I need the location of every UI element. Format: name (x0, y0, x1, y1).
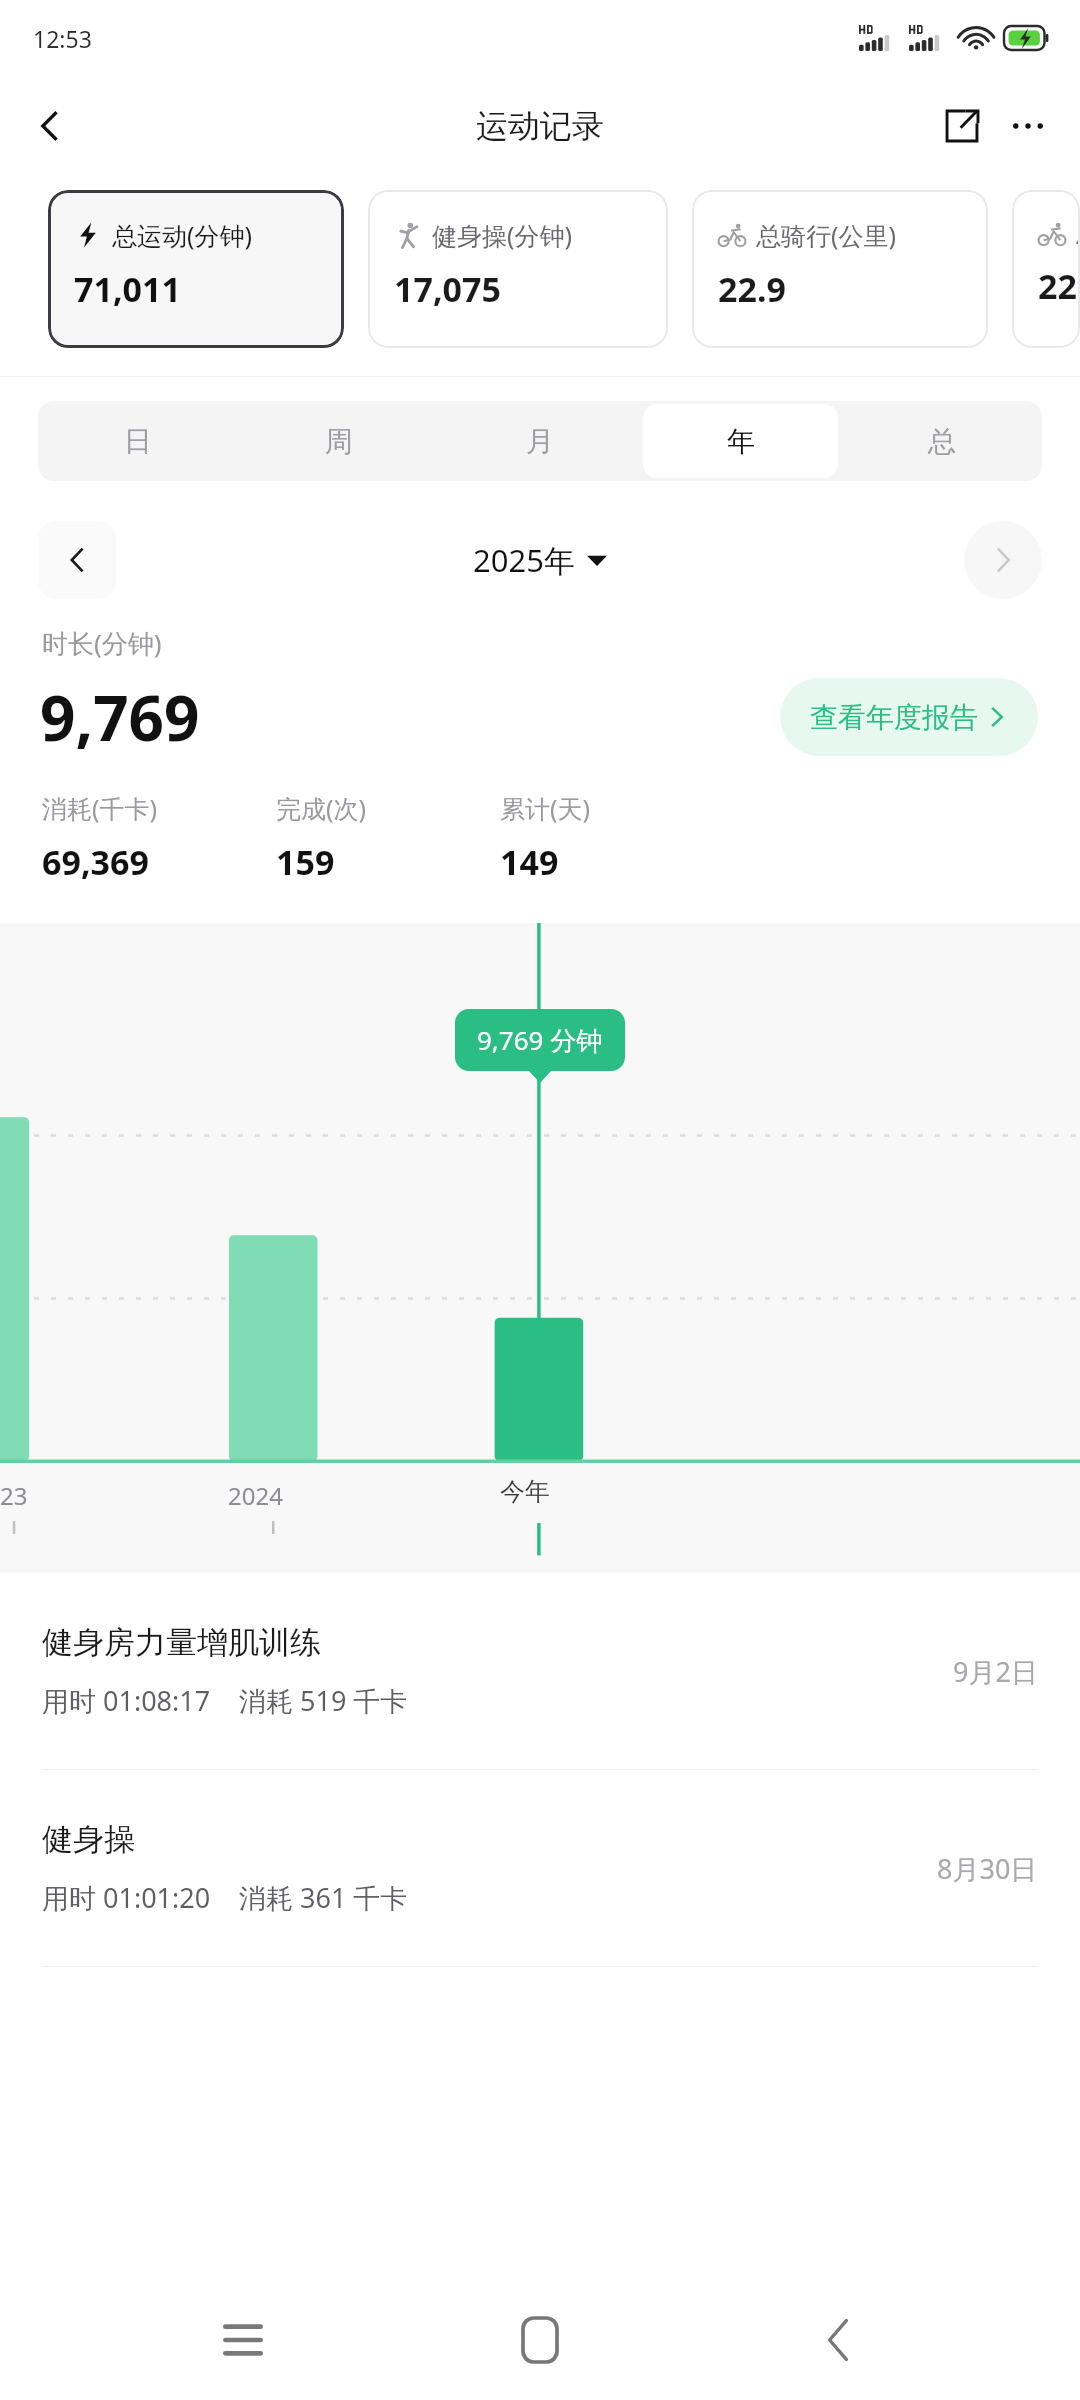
button[interactable]: 年 (643, 404, 838, 478)
staticText: 12:53 (33, 23, 92, 54)
button[interactable]: Home (485, 2285, 595, 2395)
button[interactable]: Next year (964, 521, 1042, 599)
staticText: 月 (526, 424, 554, 459)
staticText: 总骑行(公里) (756, 218, 897, 252)
staticText: 8月30日 (937, 1850, 1038, 1887)
staticText: 运动记录 (476, 106, 604, 146)
staticText: 日 (124, 424, 152, 459)
button[interactable]: More options (998, 96, 1058, 156)
staticText: 总 (928, 424, 956, 459)
button[interactable]: 健身操(分钟) (368, 190, 668, 348)
staticText: 9月2日 (953, 1653, 1038, 1690)
staticText: 消耗 361 千卡 (239, 1879, 408, 1916)
staticText: 消耗(千卡) (42, 791, 158, 825)
staticText: 健身房力量增肌训练 (42, 1623, 321, 1662)
button[interactable]: Back (22, 98, 78, 154)
staticText: 健身操(分钟) (432, 218, 573, 252)
staticText: 总运动(分钟) (112, 218, 253, 252)
button[interactable]: 健身操 (0, 1770, 1080, 1967)
staticText: 17,075 (394, 266, 501, 312)
staticText: 用时 01:08:17 (42, 1682, 211, 1719)
staticText: 时长(分钟) (42, 625, 162, 661)
button[interactable]: 总骑行(公里) (1012, 190, 1080, 348)
staticText: 年 (727, 424, 755, 459)
button[interactable]: 健身房力量增肌训练 (0, 1573, 1080, 1770)
staticText: 周 (325, 424, 353, 459)
staticText: 22.9 (1038, 263, 1080, 309)
staticText: 9,769 (40, 675, 200, 759)
button[interactable]: Previous year (38, 521, 116, 599)
staticText: 22.9 (718, 266, 786, 312)
button[interactable]: 总运动(分钟) (48, 190, 344, 348)
staticText: 今年 (500, 1476, 550, 1507)
button[interactable]: Recent apps (188, 2285, 298, 2395)
staticText: 69,369 (42, 839, 149, 885)
button[interactable]: 查看年度报告 (780, 678, 1038, 756)
staticText: 2024 (228, 1479, 283, 1512)
staticText: 用时 01:01:20 (42, 1879, 211, 1916)
staticText: 149 (500, 839, 559, 885)
staticText: 消耗 519 千卡 (239, 1682, 408, 1719)
staticText: 完成(次) (276, 791, 367, 825)
staticText: 累计(天) (500, 791, 591, 825)
button[interactable]: 总骑行(公里) (692, 190, 988, 348)
button[interactable]: Back (783, 2285, 893, 2395)
staticText: 71,011 (74, 266, 181, 312)
staticText: 2025年 (473, 539, 575, 581)
staticText: 159 (276, 839, 335, 885)
button[interactable]: 月 (442, 404, 637, 478)
staticText: 查看年度报告 (810, 700, 978, 735)
staticText: 23 (0, 1479, 28, 1512)
staticText: 总骑行(公里) (1076, 218, 1080, 249)
staticText: 9,769 分钟 (477, 1022, 603, 1058)
staticText: 健身操 (42, 1820, 135, 1859)
button[interactable]: Share (932, 96, 992, 156)
button[interactable]: 周 (241, 404, 436, 478)
button[interactable]: 日 (41, 404, 235, 478)
button[interactable]: 2025年 (465, 533, 615, 587)
button[interactable]: 总 (844, 404, 1039, 478)
